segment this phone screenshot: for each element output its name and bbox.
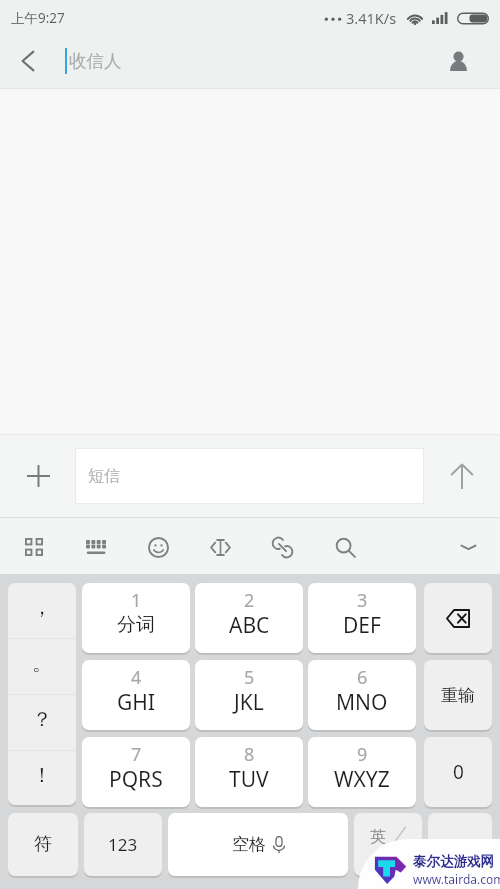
button[interactable]: Apps xyxy=(13,526,55,568)
staticText: ， xyxy=(32,595,52,620)
staticText: 3 xyxy=(357,588,368,613)
button[interactable]: 2 xyxy=(195,583,303,653)
staticText: DEF xyxy=(343,611,381,640)
button[interactable]: 重输 xyxy=(424,660,492,730)
button[interactable]: 4 xyxy=(82,660,190,730)
button[interactable]: 7 xyxy=(82,737,190,807)
staticText: 分词 xyxy=(117,613,155,637)
staticText: JKL xyxy=(234,688,264,717)
button[interactable]: Contacts xyxy=(436,39,480,83)
staticText: www.tairda.com xyxy=(413,871,500,887)
staticText: 5 xyxy=(244,665,255,690)
button[interactable]: 空格 xyxy=(168,813,348,876)
button[interactable]: 符 xyxy=(8,813,78,876)
button[interactable]: Emoji xyxy=(137,526,179,568)
button[interactable]: Hide keyboard xyxy=(447,526,489,568)
staticText: MNO xyxy=(336,688,388,717)
button[interactable]: 0 xyxy=(424,737,492,807)
button[interactable]: Enter xyxy=(428,813,492,876)
staticText: 2 xyxy=(244,588,255,613)
staticText: 英 xyxy=(370,827,386,847)
staticText: 上午9:27 xyxy=(11,9,65,27)
button[interactable]: Keyboard xyxy=(75,526,117,568)
button[interactable]: 短信 xyxy=(75,448,424,504)
button[interactable]: 123 xyxy=(84,813,162,876)
staticText: WXYZ xyxy=(334,765,390,794)
staticText: 空格 xyxy=(232,834,266,855)
button[interactable]: Add attachment xyxy=(2,440,74,512)
button[interactable]: Text cursor xyxy=(199,526,241,568)
staticText: ABC xyxy=(229,611,270,640)
button[interactable]: Attach xyxy=(261,526,303,568)
button[interactable]: 9 xyxy=(308,737,416,807)
staticText: GHI xyxy=(117,688,155,717)
button[interactable]: Backspace xyxy=(424,583,492,653)
staticText: 收信人 xyxy=(69,50,122,72)
button[interactable]: ？ xyxy=(8,695,76,750)
staticText: 重输 xyxy=(441,685,475,706)
staticText: 7 xyxy=(131,742,142,767)
staticText: ！ xyxy=(32,763,52,788)
button[interactable]: 3 xyxy=(308,583,416,653)
button[interactable]: ！ xyxy=(8,751,76,805)
staticText: 8 xyxy=(244,742,255,767)
button[interactable]: Send xyxy=(426,440,498,512)
staticText: PQRS xyxy=(109,765,163,794)
staticText: 1 xyxy=(131,588,142,613)
button[interactable]: 6 xyxy=(308,660,416,730)
staticText: 4 xyxy=(131,665,142,690)
staticText: 。 xyxy=(32,651,52,676)
button[interactable]: 5 xyxy=(195,660,303,730)
button[interactable]: ， xyxy=(8,583,76,638)
button[interactable]: 。 xyxy=(8,639,76,694)
staticText: 6 xyxy=(357,665,368,690)
staticText: 9 xyxy=(357,742,368,767)
staticText: 短信 xyxy=(88,466,120,486)
button[interactable]: Switch language xyxy=(354,813,422,876)
staticText: 泰尔达游戏网 xyxy=(413,853,494,870)
staticText: ？ xyxy=(32,707,52,732)
button[interactable]: Search xyxy=(324,526,366,568)
staticText: 0 xyxy=(453,759,464,785)
button[interactable]: Back xyxy=(5,38,51,84)
staticText: 符 xyxy=(34,833,52,856)
button[interactable]: 1 xyxy=(82,583,190,653)
staticText: TUV xyxy=(229,765,269,794)
staticText: 123 xyxy=(108,833,138,856)
staticText: 3.41K/s xyxy=(346,8,397,28)
button[interactable]: 8 xyxy=(195,737,303,807)
